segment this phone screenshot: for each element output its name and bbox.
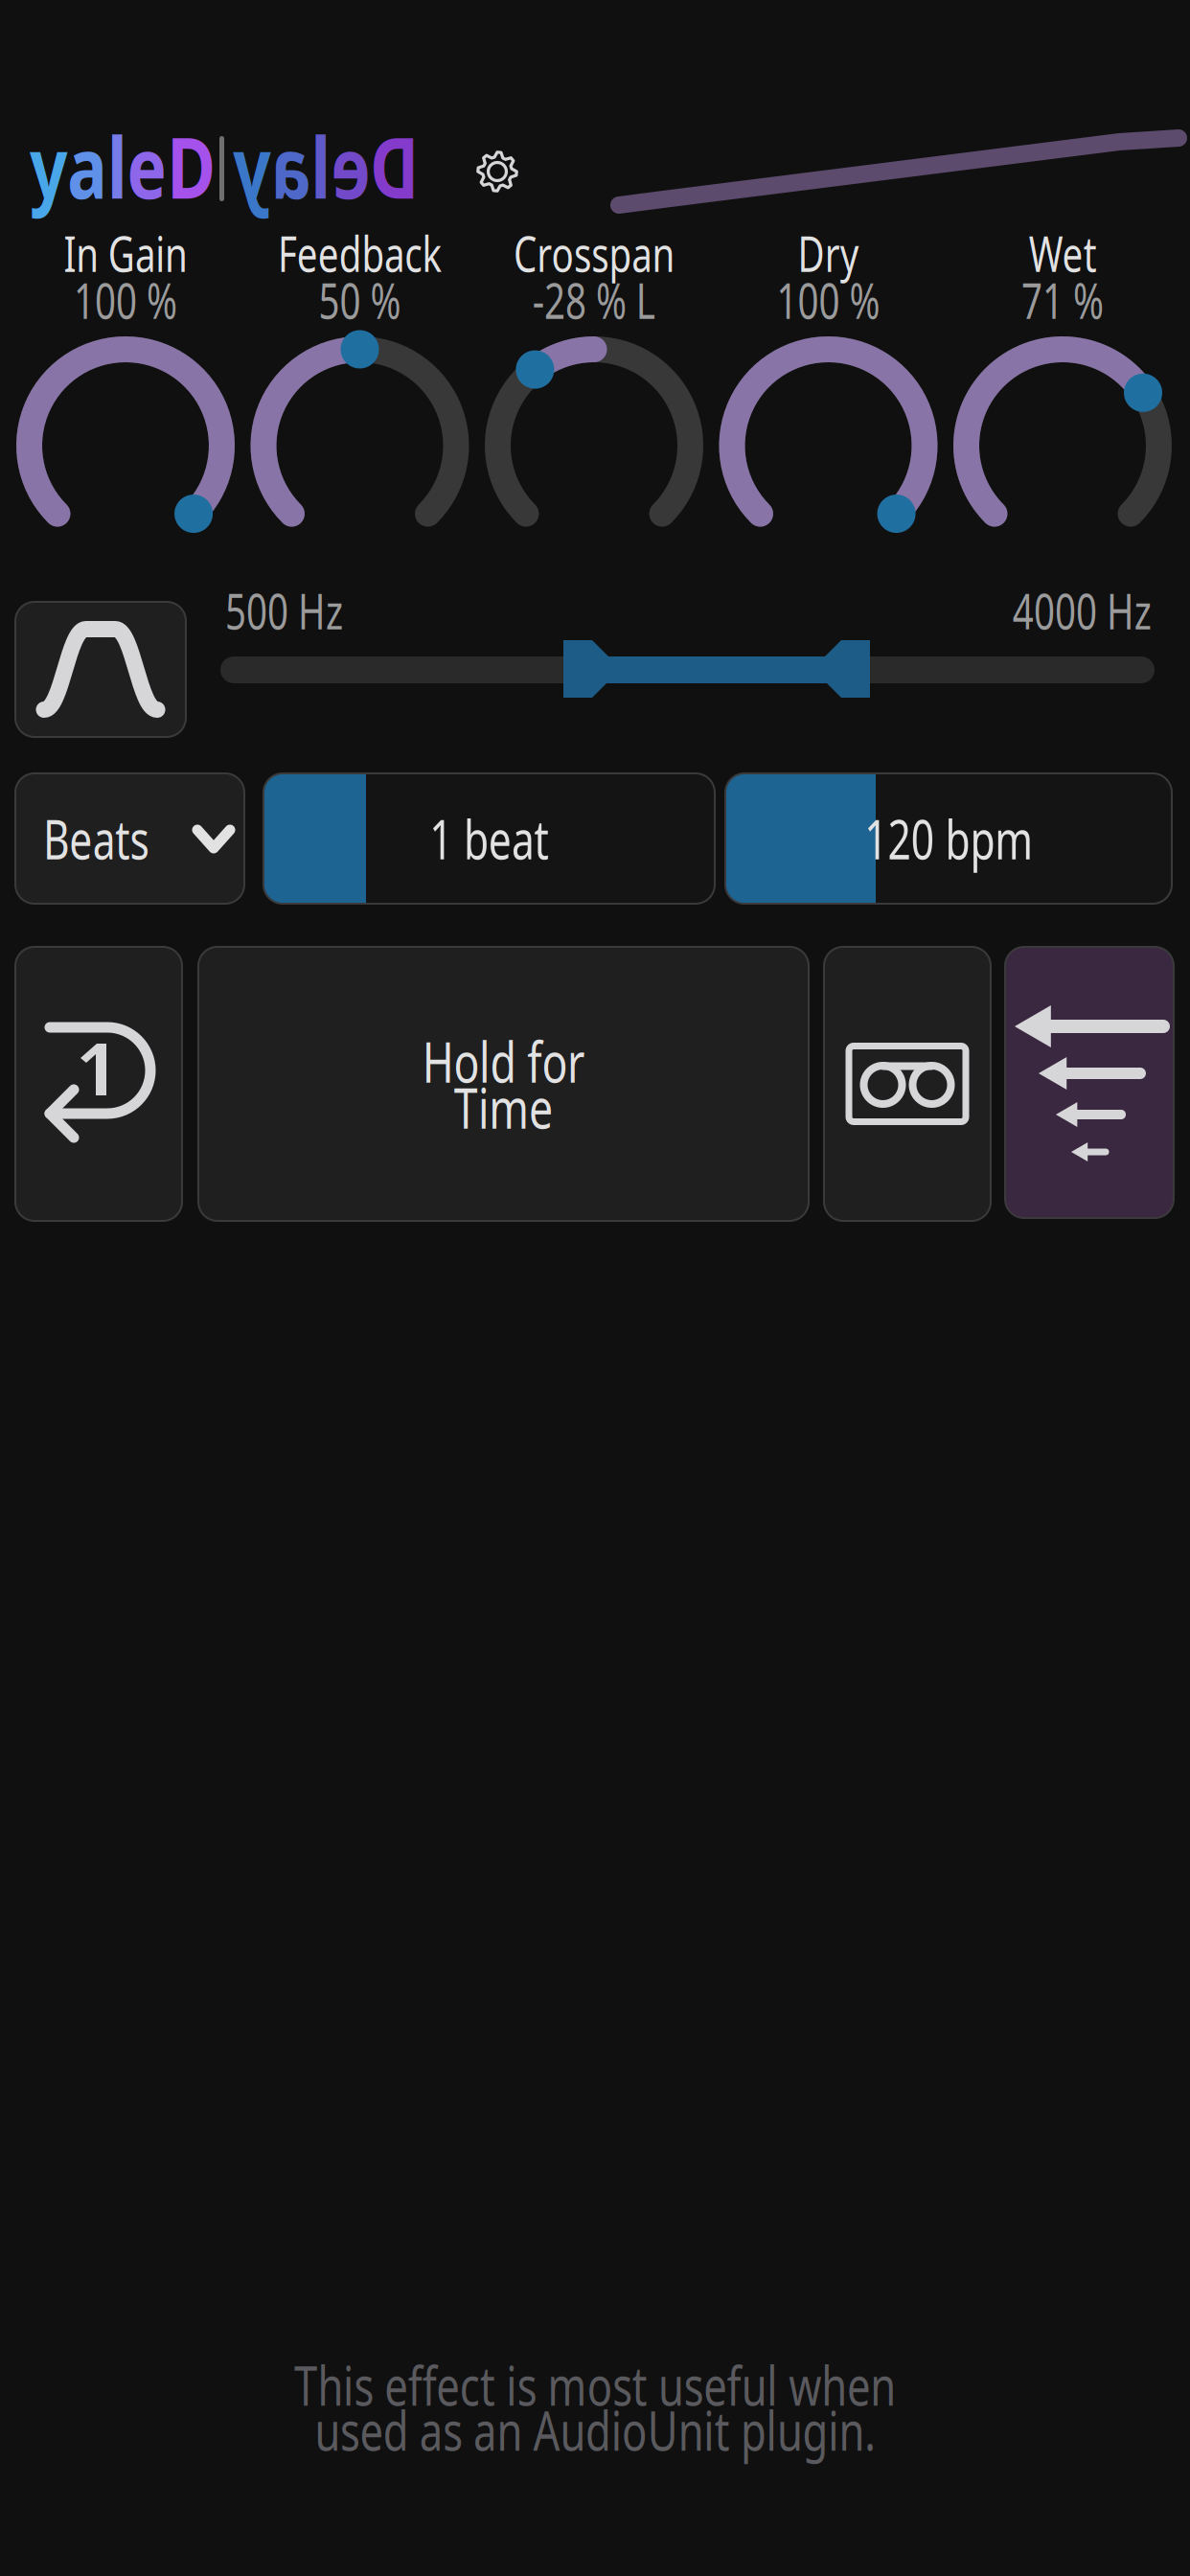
staticText: 4000 Hz bbox=[1047, 578, 1190, 643]
staticText: -28 % L bbox=[550, 268, 712, 332]
staticText: 71 % bbox=[1045, 268, 1154, 332]
staticText: This effect is most useful when bbox=[387, 2348, 1179, 2421]
staticText: Wet bbox=[1055, 221, 1144, 285]
button[interactable]: Filter shape bbox=[15, 602, 186, 737]
staticText: e bbox=[480, 110, 531, 222]
staticText: Feedback bbox=[289, 221, 504, 285]
button[interactable]: Hold for bbox=[198, 947, 809, 1221]
staticText: used as an AudioUnit plugin. bbox=[414, 2393, 1152, 2466]
staticText: Hold for bbox=[493, 1023, 707, 1098]
staticText: 500 Hz bbox=[225, 578, 380, 643]
staticText: Time bbox=[535, 1069, 665, 1144]
staticText: Dry bbox=[825, 221, 905, 285]
staticText: 120 bpm bbox=[908, 803, 1130, 874]
staticText: D bbox=[419, 110, 480, 222]
staticText: 100 % bbox=[94, 268, 230, 332]
button[interactable]: Beats bbox=[15, 773, 244, 904]
staticText: Beats bbox=[43, 803, 183, 874]
staticText: y bbox=[606, 110, 654, 222]
button[interactable]: Repeat one bbox=[15, 947, 182, 1221]
button[interactable]: Settings bbox=[460, 134, 535, 209]
staticText: a bbox=[78, 110, 128, 222]
staticText: 1 beat bbox=[482, 803, 639, 874]
button[interactable]: Tape mode bbox=[824, 947, 991, 1221]
staticText: Crosspan bbox=[525, 221, 737, 285]
staticText: D bbox=[204, 110, 265, 222]
staticText: e bbox=[153, 110, 204, 222]
button[interactable]: Echo taps bbox=[1005, 947, 1174, 1218]
staticText: y bbox=[30, 110, 78, 222]
staticText: l bbox=[128, 110, 153, 222]
staticText: 50 % bbox=[343, 268, 451, 332]
button[interactable]: 1 beat bbox=[263, 773, 715, 904]
staticText: In Gain bbox=[81, 221, 244, 285]
button[interactable]: 120 bpm bbox=[725, 773, 1172, 904]
staticText: 100 % bbox=[797, 268, 933, 332]
